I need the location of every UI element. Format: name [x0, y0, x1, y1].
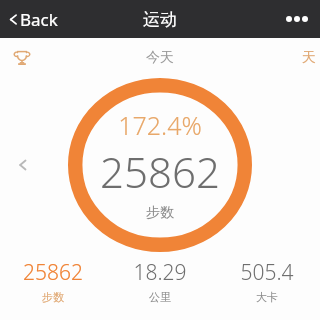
button[interactable]: 18.29	[106, 252, 213, 310]
staticText: 步数	[146, 204, 174, 222]
button[interactable]: More options	[280, 2, 314, 36]
button[interactable]: 今天	[132, 43, 188, 73]
staticText: 天	[302, 49, 316, 67]
staticText: 18.29	[133, 258, 187, 287]
staticText: 172.4%	[118, 108, 202, 142]
staticText: 25862	[23, 258, 83, 287]
button[interactable]: 505.4	[213, 252, 320, 310]
staticText: 运动	[143, 9, 177, 30]
staticText: 步数	[42, 290, 64, 304]
staticText: 25862	[100, 143, 220, 200]
staticText: 公里	[149, 290, 171, 304]
button[interactable]: 天	[292, 43, 320, 73]
staticText: 大卡	[256, 290, 278, 304]
staticText: 505.4	[240, 258, 294, 287]
staticText: 今天	[146, 49, 174, 67]
button[interactable]: 25862	[0, 252, 106, 310]
button[interactable]: Achievements	[8, 44, 36, 72]
button[interactable]: Back	[7, 8, 58, 31]
staticText: Back	[20, 8, 58, 31]
button[interactable]: Previous	[10, 152, 36, 178]
